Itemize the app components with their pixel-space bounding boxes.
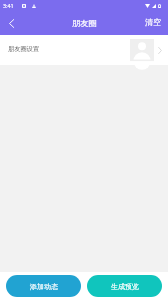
button[interactable]: 朋友圈设置 [0, 35, 168, 65]
staticText: 朋友圈设置 [8, 45, 39, 53]
button[interactable]: 生成预览 [87, 275, 162, 297]
staticText: 3:41 [3, 2, 14, 9]
button[interactable]: 添加动态 [6, 275, 81, 297]
button[interactable]: Back [0, 13, 23, 35]
staticText: 添加动态 [30, 282, 58, 291]
staticText: 生成预览 [111, 282, 139, 291]
staticText: 清空 [145, 17, 161, 27]
button[interactable]: 清空 [137, 13, 168, 35]
staticText: 朋友圈 [72, 18, 97, 28]
